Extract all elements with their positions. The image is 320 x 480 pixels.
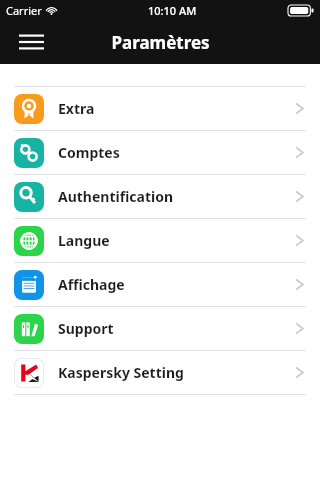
staticText: Affichage: [58, 275, 125, 294]
button[interactable]: Affichage: [0, 263, 320, 306]
staticText: Support: [58, 319, 114, 338]
staticText: Carrier: [6, 3, 42, 18]
staticText: Paramètres: [111, 31, 210, 54]
button[interactable]: Kaspersky Setting: [0, 351, 320, 394]
button[interactable]: Menu: [10, 21, 52, 63]
button[interactable]: Extra: [0, 87, 320, 130]
staticText: Authentification: [58, 187, 173, 206]
button[interactable]: Langue: [0, 219, 320, 262]
staticText: Langue: [58, 231, 110, 250]
button[interactable]: Support: [0, 307, 320, 350]
button[interactable]: Comptes: [0, 131, 320, 174]
staticText: 10:10 AM: [148, 3, 197, 18]
staticText: Kaspersky Setting: [58, 363, 184, 382]
button[interactable]: Authentification: [0, 175, 320, 218]
staticText: Comptes: [58, 143, 120, 162]
staticText: Extra: [58, 99, 95, 118]
